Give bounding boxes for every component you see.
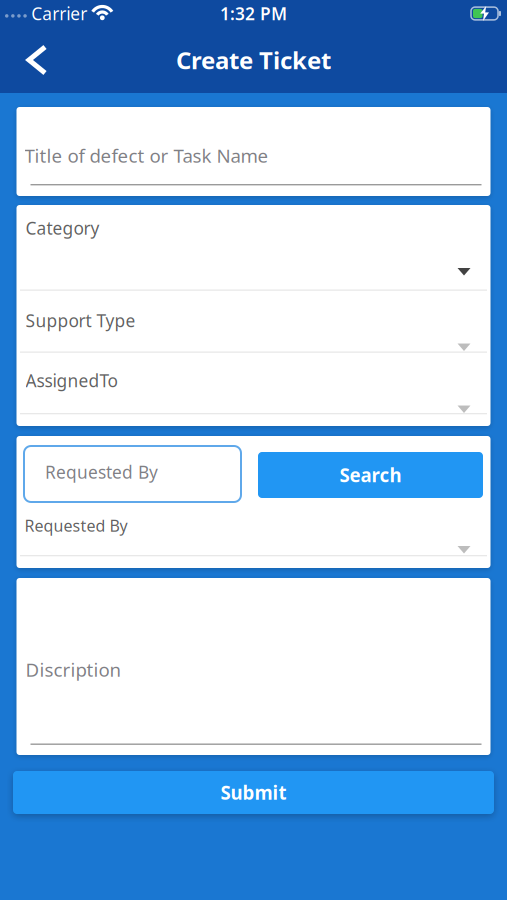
- staticText: Requested By: [45, 460, 158, 483]
- staticText: Title of defect or Task Name: [24, 143, 268, 168]
- button[interactable]: Back: [0, 47, 57, 73]
- staticText: Carrier: [31, 2, 87, 25]
- staticText: Support Type: [25, 309, 135, 332]
- staticText: Create Ticket: [176, 44, 331, 76]
- staticText: Discription: [25, 657, 121, 682]
- button[interactable]: AssignedTo: [16, 352, 490, 414]
- staticText: 1:32 PM: [220, 2, 287, 25]
- staticText: Submit: [220, 780, 286, 805]
- staticText: Search: [339, 463, 401, 487]
- button[interactable]: Requested By: [16, 515, 490, 559]
- button[interactable]: Category: [16, 205, 490, 291]
- button[interactable]: Search: [258, 452, 483, 498]
- button[interactable]: Submit: [13, 771, 494, 814]
- button[interactable]: Support Type: [16, 290, 490, 352]
- staticText: Category: [25, 216, 99, 239]
- staticText: AssignedTo: [25, 369, 117, 392]
- button[interactable]: Requested By: [24, 446, 241, 502]
- button[interactable]: Discription: [16, 578, 490, 755]
- staticText: Requested By: [24, 515, 127, 536]
- button[interactable]: Title of defect or Task Name: [16, 107, 490, 196]
